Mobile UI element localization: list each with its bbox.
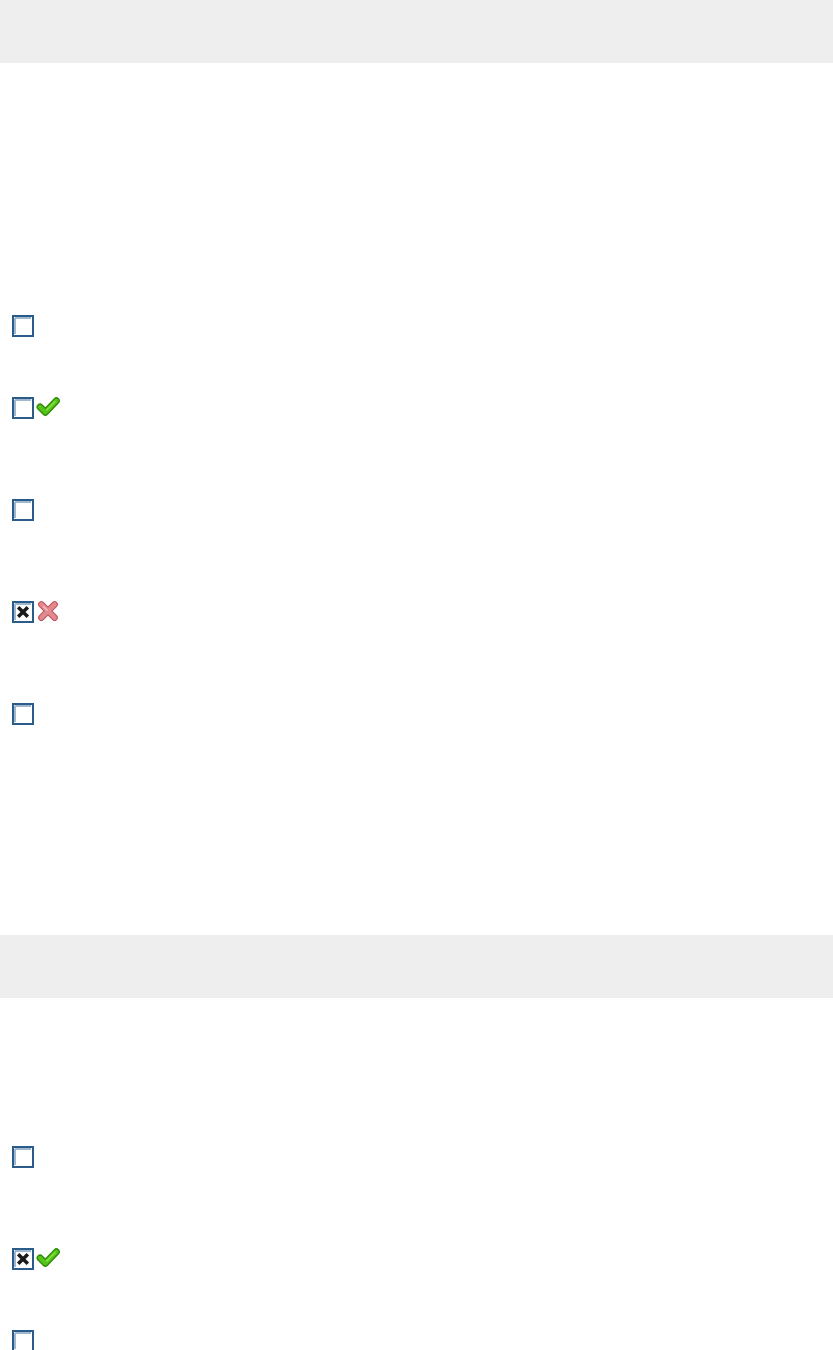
button[interactable]: Option 2 (12, 397, 34, 419)
button[interactable]: Option 1 (12, 315, 34, 337)
button[interactable]: Passed (37, 1247, 59, 1269)
button[interactable]: Option 7 (12, 1248, 34, 1270)
button[interactable]: Option 5 (12, 703, 34, 725)
button[interactable]: Option 8 (12, 1330, 34, 1350)
button[interactable]: Failed (37, 600, 59, 622)
button[interactable]: Option 6 (12, 1146, 34, 1168)
button[interactable]: Passed (37, 396, 59, 418)
button[interactable]: Option 3 (12, 499, 34, 521)
button[interactable]: Option 4 (12, 601, 34, 623)
